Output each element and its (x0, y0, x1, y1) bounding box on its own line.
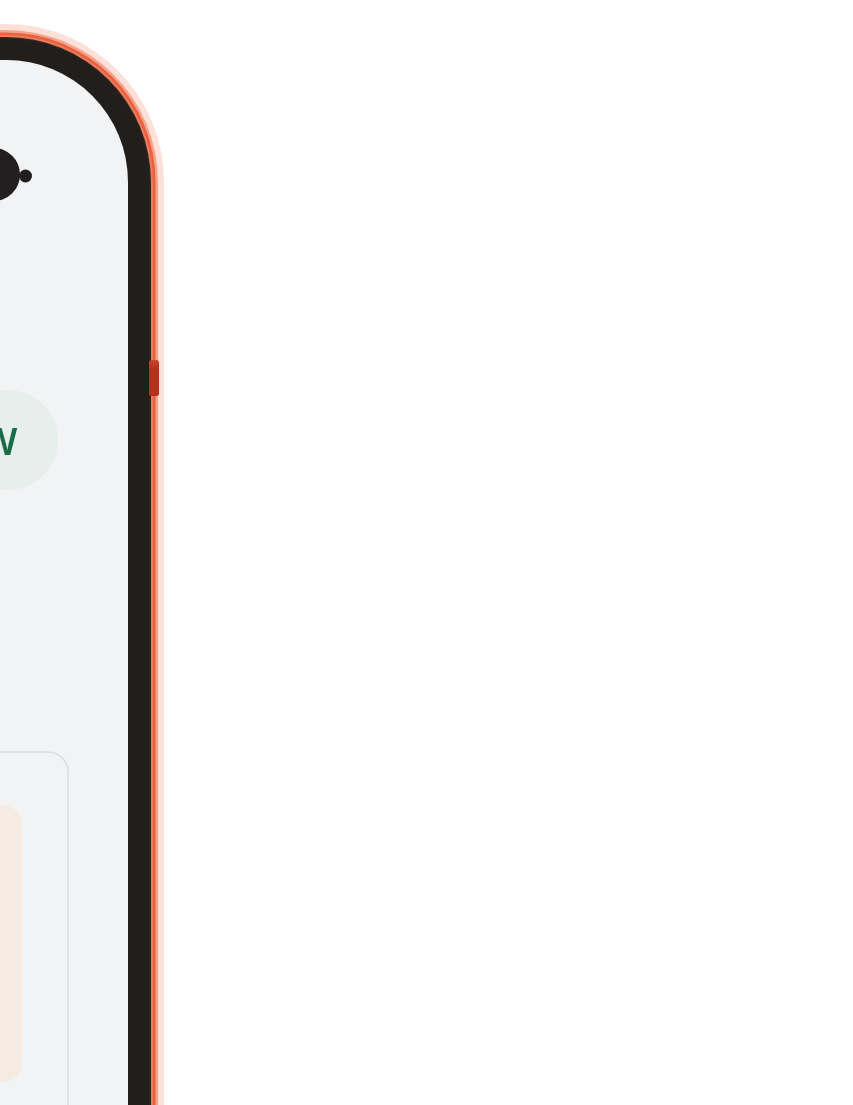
button[interactable]: Phone mockup preview (0, 0, 853, 1105)
